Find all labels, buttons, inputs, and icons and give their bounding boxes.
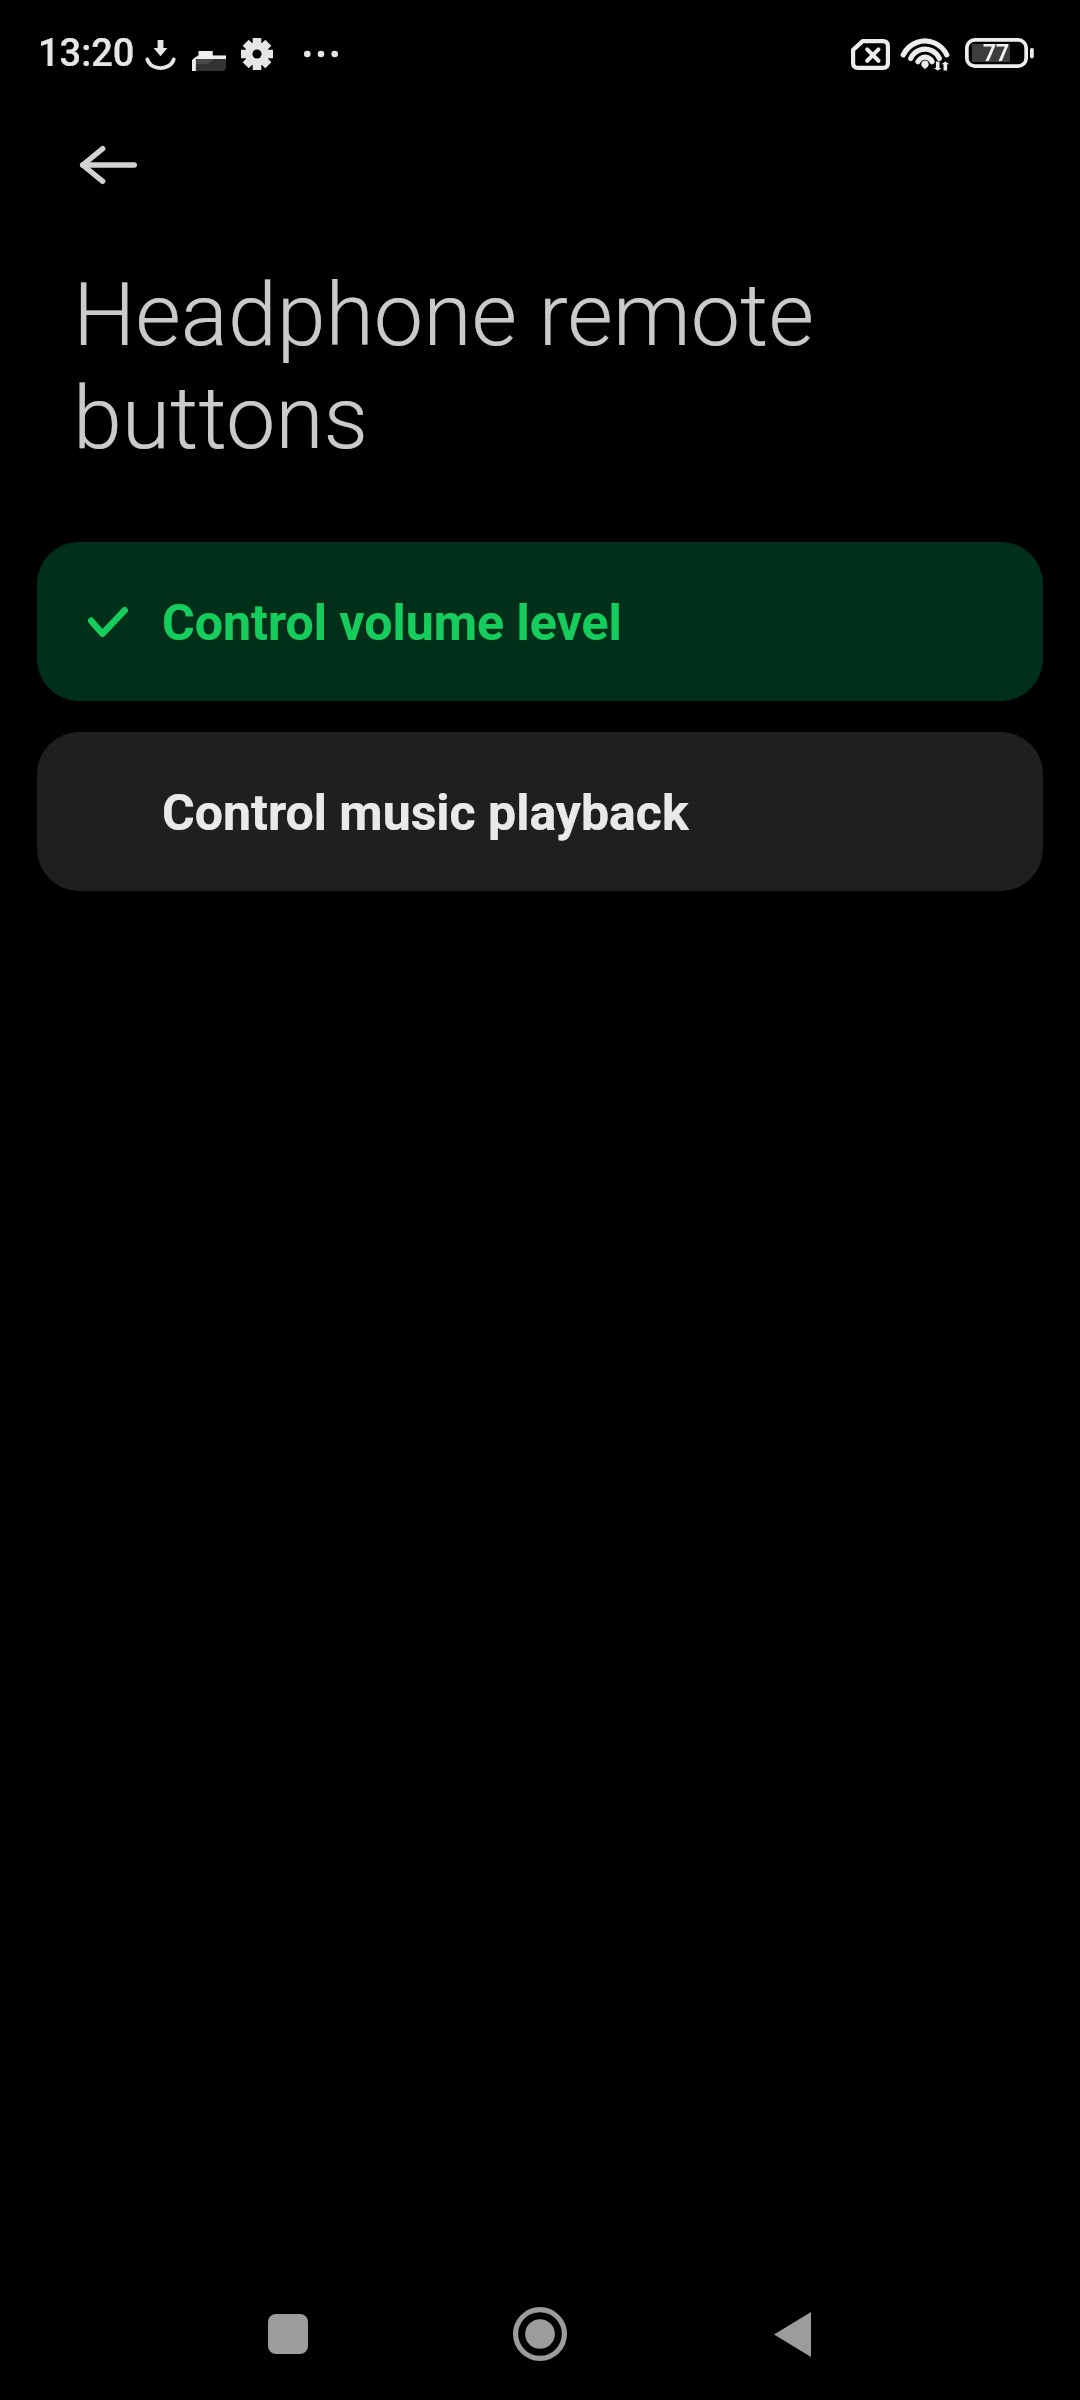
button[interactable]: Control volume level — [37, 542, 1043, 701]
staticText: 13:20 — [38, 31, 135, 76]
staticText: Headphone remote buttons — [73, 263, 814, 470]
button[interactable]: Navigate up — [58, 115, 158, 215]
button[interactable]: Control music playback — [37, 732, 1043, 891]
staticText: 77 — [983, 40, 1010, 67]
staticText: Control volume level — [162, 594, 622, 653]
staticText: Control music playback — [162, 784, 689, 843]
button[interactable]: Home — [480, 2274, 600, 2394]
button[interactable]: Recent apps — [228, 2274, 348, 2394]
button[interactable]: Back — [732, 2274, 852, 2394]
